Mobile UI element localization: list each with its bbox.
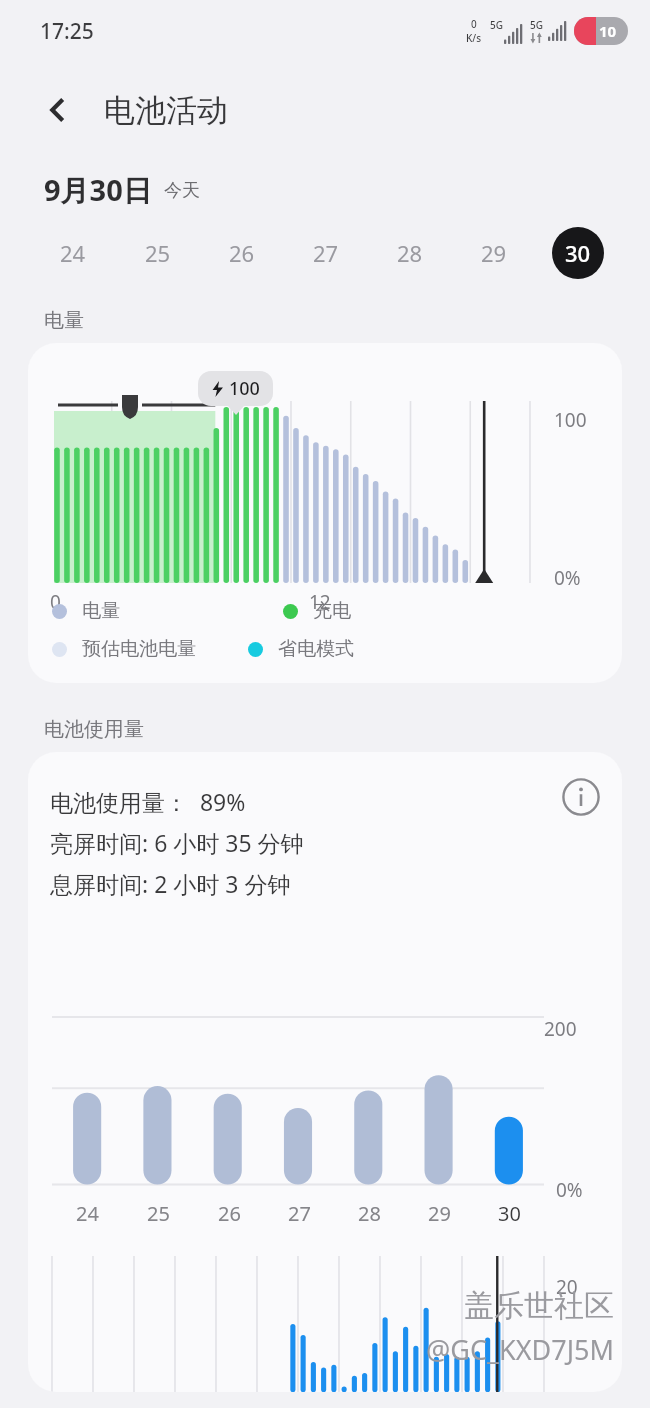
staticText: 电池使用量： 89%	[50, 786, 246, 817]
button[interactable]: 30	[536, 222, 620, 284]
staticText: 28	[397, 238, 423, 268]
button[interactable]: 29	[452, 222, 536, 284]
button[interactable]: 24	[30, 222, 115, 284]
staticText: 26	[229, 238, 255, 268]
staticText: 电池使用量	[44, 717, 144, 742]
staticText: 0	[50, 589, 61, 615]
staticText: @GC_KXD7J5M	[426, 1331, 614, 1368]
staticText: 预估电池电量	[82, 637, 196, 661]
staticText: 10	[599, 21, 617, 41]
staticText: 24	[76, 1200, 99, 1227]
staticText: 0%	[554, 565, 581, 591]
staticText: 亮屏时间: 6 小时 35 分钟	[50, 827, 304, 858]
staticText: 息屏时间: 2 小时 3 分钟	[50, 868, 291, 899]
staticText: 省电模式	[278, 637, 354, 661]
staticText: 电量	[82, 599, 120, 623]
staticText: 28	[358, 1200, 381, 1227]
button[interactable]: 25	[115, 222, 200, 284]
staticText: 100	[229, 376, 260, 401]
staticText: 充电	[313, 599, 351, 623]
staticText: 今天	[164, 179, 200, 202]
button[interactable]: 26	[200, 222, 284, 284]
staticText: 12	[309, 589, 331, 615]
staticText: 30	[498, 1200, 521, 1227]
staticText: 20	[556, 1274, 578, 1300]
staticText: 26	[218, 1200, 241, 1227]
staticText: 5G	[490, 18, 503, 32]
button[interactable]: 27	[284, 222, 368, 284]
staticText: 25	[145, 238, 171, 268]
staticText: 17:25	[40, 17, 94, 46]
staticText: 0	[471, 17, 477, 31]
staticText: 电池活动	[104, 91, 228, 130]
button[interactable]: Information	[554, 770, 608, 824]
staticText: 25	[147, 1200, 170, 1227]
button[interactable]: 28	[368, 222, 452, 284]
staticText: 5G	[530, 18, 543, 32]
staticText: 电量	[44, 308, 84, 333]
staticText: 盖乐世社区	[464, 1287, 614, 1325]
staticText: 9月30日	[44, 170, 152, 210]
staticText: 27	[288, 1200, 311, 1227]
staticText: 100	[554, 407, 587, 433]
staticText: K/s	[466, 31, 482, 45]
staticText: 0%	[556, 1177, 583, 1203]
button[interactable]: 100	[28, 343, 622, 683]
staticText: 200	[544, 1016, 577, 1042]
button[interactable]: Back	[30, 82, 86, 138]
staticText: 29	[428, 1200, 451, 1227]
staticText: 29	[481, 238, 507, 268]
staticText: 27	[313, 238, 339, 268]
staticText: 24	[60, 238, 86, 268]
staticText: 30	[565, 238, 591, 268]
